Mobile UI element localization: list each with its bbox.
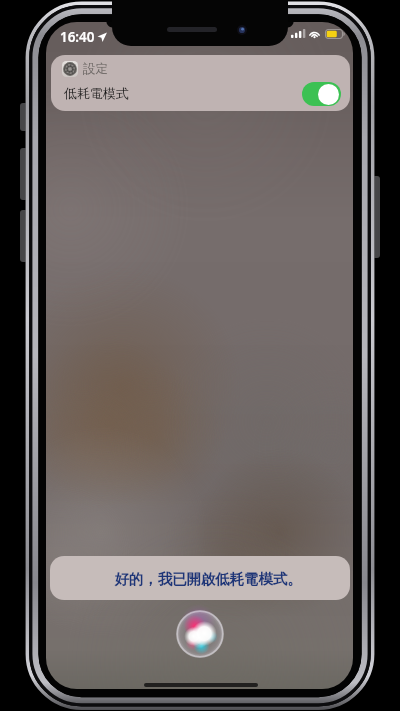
button[interactable]: 好的，我已開啟低耗電模式。 — [50, 556, 350, 600]
button[interactable]: Siri — [176, 610, 224, 658]
staticText: 低耗電模式 — [64, 85, 129, 101]
staticText: 16:40 — [60, 28, 95, 46]
button[interactable]: Low Power Mode toggle — [302, 82, 341, 106]
staticText: 設定 — [83, 61, 109, 77]
button[interactable]: 設定 — [51, 55, 350, 111]
staticText: 好的，我已開啟低耗電模式。 — [114, 570, 302, 588]
